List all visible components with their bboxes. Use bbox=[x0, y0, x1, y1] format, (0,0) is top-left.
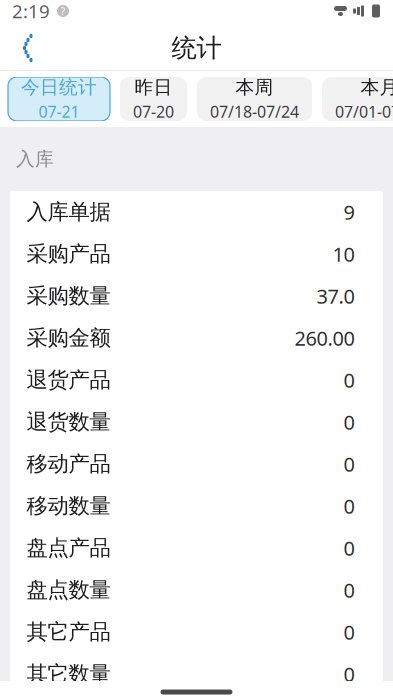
button[interactable]: 盘点产品 bbox=[10, 527, 382, 569]
button[interactable]: 采购数量 bbox=[10, 275, 382, 317]
staticText: 10 bbox=[332, 241, 354, 267]
staticText: 退货数量 bbox=[26, 409, 110, 435]
staticText: 07-20 bbox=[133, 101, 174, 122]
staticText: 0 bbox=[343, 619, 354, 645]
staticText: 本月 bbox=[360, 76, 393, 99]
staticText: 盘点产品 bbox=[26, 535, 110, 561]
staticText: 07/01-07/31 bbox=[335, 101, 393, 122]
button[interactable]: 其它数量 bbox=[10, 653, 382, 695]
staticText: 移动产品 bbox=[26, 451, 110, 477]
button[interactable]: 返回 bbox=[0, 25, 50, 71]
staticText: 统计 bbox=[171, 32, 221, 63]
button[interactable]: 盘点数量 bbox=[10, 569, 382, 611]
staticText: 0 bbox=[343, 661, 354, 687]
staticText: 37.0 bbox=[316, 283, 354, 309]
button[interactable]: 退货数量 bbox=[10, 401, 382, 443]
button[interactable]: 移动产品 bbox=[10, 443, 382, 485]
staticText: 260.00 bbox=[294, 325, 354, 351]
staticText: 0 bbox=[343, 493, 354, 519]
staticText: 移动数量 bbox=[26, 493, 110, 519]
staticText: 本周 bbox=[235, 76, 273, 99]
staticText: 今日统计 bbox=[21, 76, 97, 99]
button[interactable]: 昨日 bbox=[120, 77, 187, 121]
staticText: 入库单据 bbox=[26, 199, 110, 225]
staticText: 2:19 bbox=[12, 0, 50, 23]
staticText: 采购产品 bbox=[26, 241, 110, 267]
button[interactable]: 入库单据 bbox=[10, 191, 382, 233]
staticText: 0 bbox=[343, 577, 354, 603]
staticText: 9 bbox=[343, 199, 354, 225]
button[interactable]: 采购金额 bbox=[10, 317, 382, 359]
staticText: 采购金额 bbox=[26, 325, 110, 351]
staticText: 0 bbox=[343, 535, 354, 561]
staticText: 入库 bbox=[16, 147, 54, 170]
staticText: 其它产品 bbox=[26, 619, 110, 645]
staticText: 0 bbox=[343, 367, 354, 393]
staticText: 0 bbox=[343, 451, 354, 477]
staticText: 昨日 bbox=[134, 76, 172, 99]
staticText: 盘点数量 bbox=[26, 577, 110, 603]
staticText: 退货产品 bbox=[26, 367, 110, 393]
staticText: 0 bbox=[343, 409, 354, 435]
staticText: ? bbox=[60, 4, 65, 18]
button[interactable]: 采购产品 bbox=[10, 233, 382, 275]
staticText: 其它数量 bbox=[26, 661, 110, 687]
staticText: 07-21 bbox=[38, 101, 79, 122]
button[interactable]: 本月 bbox=[322, 77, 393, 121]
staticText: 采购数量 bbox=[26, 283, 110, 309]
button[interactable]: 本周 bbox=[197, 77, 312, 121]
button[interactable]: 其它产品 bbox=[10, 611, 382, 653]
staticText: 07/18-07/24 bbox=[210, 101, 299, 122]
button[interactable]: 移动数量 bbox=[10, 485, 382, 527]
button[interactable]: 退货产品 bbox=[10, 359, 382, 401]
button[interactable]: 今日统计 bbox=[8, 77, 110, 121]
